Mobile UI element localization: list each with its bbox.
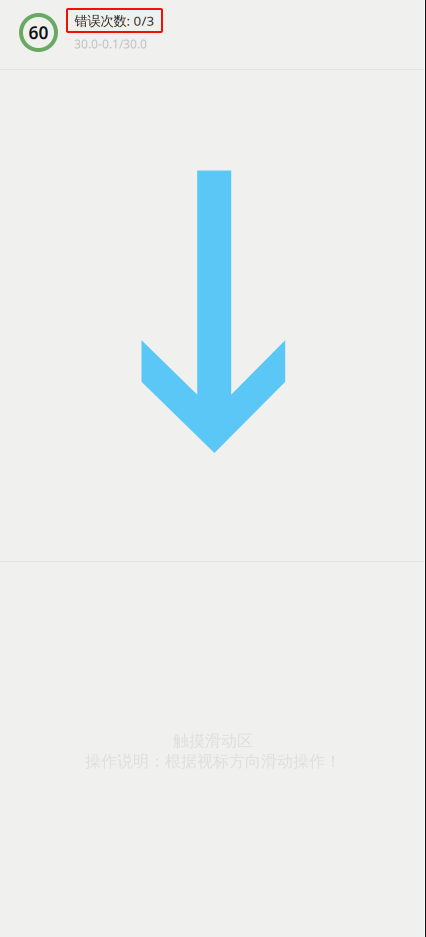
button[interactable]: 当前视力 60 [19, 13, 58, 52]
staticText: 错误次数: 0/3 [74, 12, 154, 29]
staticText: 操作说明：根据视标方向滑动操作！ [85, 752, 341, 771]
staticText: 触摸滑动区 [173, 731, 253, 751]
staticText: 30.0-0.1/30.0 [74, 36, 147, 52]
button[interactable]: 触摸滑动区 [0, 562, 426, 937]
staticText: 60 [28, 21, 48, 44]
